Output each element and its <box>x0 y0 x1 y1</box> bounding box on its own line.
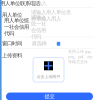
staticText: 请选择 <box>31 40 46 47</box>
staticText: 提交 <box>44 93 54 100</box>
staticText: 点击上传附件 <box>36 74 60 79</box>
staticText: 用人单位 <box>2 12 22 18</box>
staticText: 支持上传 jpg、png、pdf、doc 等格式文件 <box>68 49 94 64</box>
staticText: 请输入统一社会信用代码 <box>31 14 46 40</box>
button[interactable]: 提交 <box>6 92 93 100</box>
button[interactable]: 点击上传附件 <box>33 57 64 82</box>
staticText: 用人单位联系电话 <box>0 0 40 7</box>
staticText: 窗口时间 <box>2 40 22 47</box>
staticText: 请输入用人单位名称请输入用人 <box>31 9 71 22</box>
staticText: 上传资料 <box>2 52 22 59</box>
staticText: 用人单位统一社会信用代码 <box>4 17 29 37</box>
staticText: 请输入 <box>31 0 46 7</box>
